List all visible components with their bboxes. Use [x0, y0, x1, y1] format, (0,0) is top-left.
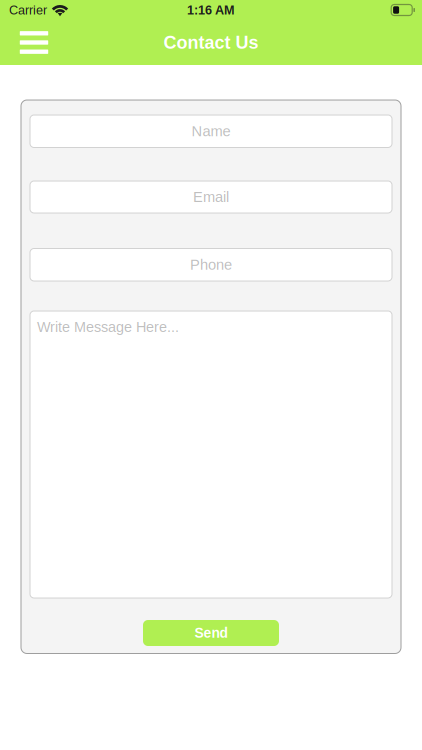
- button[interactable]: Write Message Here...: [30, 311, 392, 598]
- staticText: Contact Us: [163, 32, 258, 52]
- button[interactable]: Email: [30, 181, 392, 213]
- button[interactable]: Send: [143, 620, 279, 646]
- button[interactable]: Name: [30, 115, 392, 147]
- staticText: Name: [191, 123, 230, 139]
- staticText: Email: [193, 189, 229, 205]
- staticText: Send: [194, 625, 227, 641]
- staticText: Carrier: [9, 3, 47, 17]
- staticText: Write Message Here...: [37, 319, 179, 335]
- staticText: 1:16 AM: [187, 3, 235, 17]
- button[interactable]: Phone: [30, 248, 392, 281]
- staticText: Phone: [190, 257, 232, 273]
- button[interactable]: Menu: [10, 20, 58, 65]
